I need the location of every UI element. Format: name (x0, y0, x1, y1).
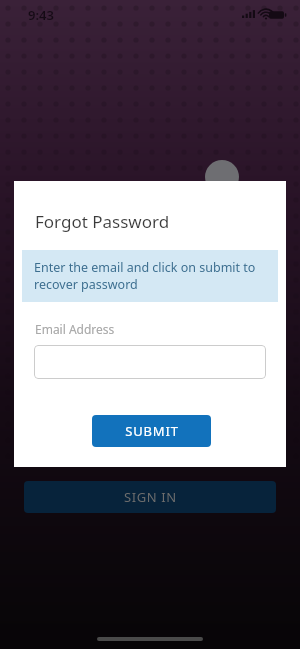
staticText: SUBMIT (125, 422, 179, 440)
staticText: Enter the email and click on submit to r… (34, 259, 266, 293)
button[interactable] (34, 345, 266, 379)
staticText: Forgot Password (35, 210, 170, 233)
button[interactable]: SIGN IN (24, 481, 276, 513)
staticText: SIGN IN (124, 488, 177, 506)
staticText: Email Address (35, 321, 115, 337)
staticText: 9:43 (28, 6, 54, 24)
button[interactable]: SUBMIT (92, 415, 211, 447)
